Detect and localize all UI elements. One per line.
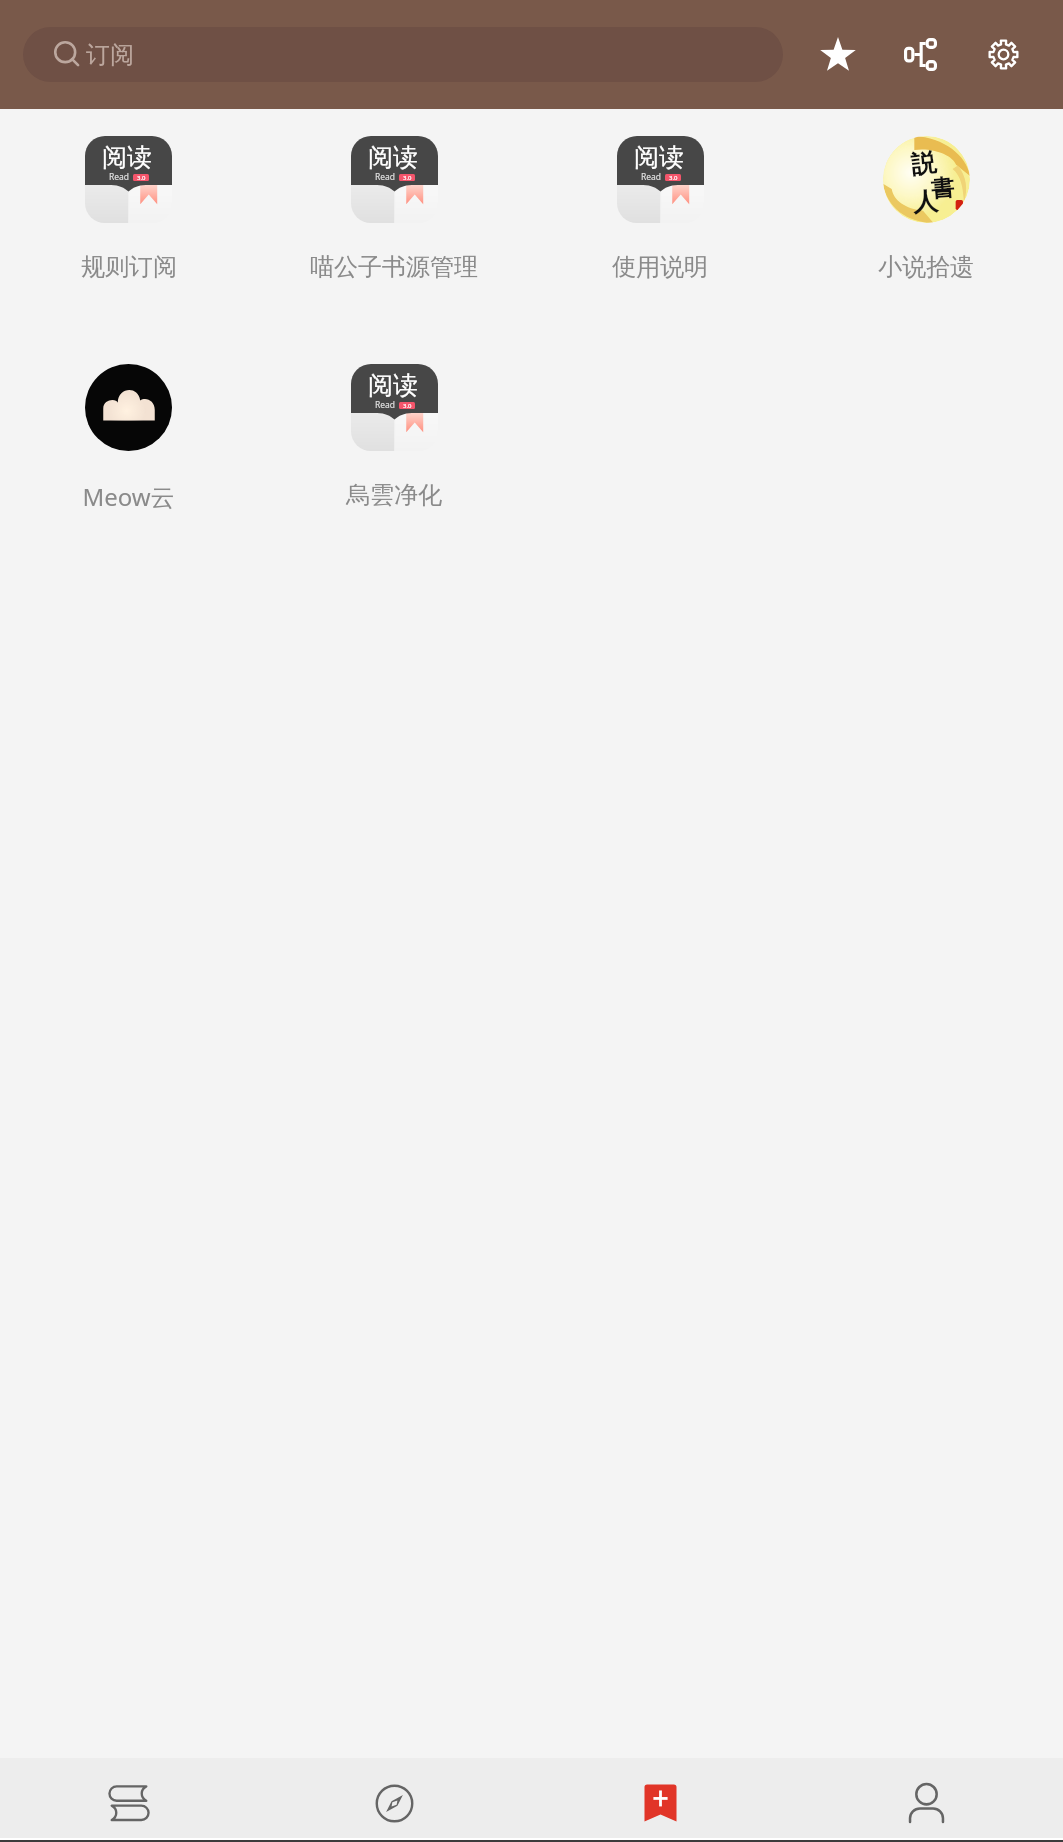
staticText: 書 <box>930 173 955 204</box>
button[interactable]: Subscriptions <box>527 1763 793 1842</box>
button[interactable]: 阅读 <box>261 337 527 565</box>
staticText: 订阅 <box>86 40 134 70</box>
button[interactable]: Explore <box>261 1763 527 1842</box>
button[interactable]: 阅读 <box>527 109 793 337</box>
staticText: 3.0 <box>403 174 412 181</box>
staticText: 3.0 <box>669 174 678 181</box>
button[interactable]: Favorites <box>796 13 879 96</box>
button[interactable]: Bookshelf <box>0 1763 261 1842</box>
staticText: 烏雲净化 <box>346 480 442 510</box>
staticText: 喵公子书源管理 <box>310 252 478 282</box>
button[interactable]: 阅读 <box>0 109 261 337</box>
button[interactable]: 説 <box>793 109 1059 337</box>
staticText: Read <box>375 171 396 183</box>
staticText: Meow云 <box>82 480 175 513</box>
staticText: 阅读 <box>368 370 418 401</box>
button[interactable]: Source groups <box>879 13 962 96</box>
staticText: 规则订阅 <box>81 252 177 282</box>
staticText: 人 <box>912 185 939 218</box>
button[interactable]: 阅读 <box>261 109 527 337</box>
staticText: 阅读 <box>368 142 418 173</box>
staticText: 阅读 <box>102 142 152 173</box>
button[interactable]: 订阅 <box>23 27 783 82</box>
staticText: 3.0 <box>137 174 146 181</box>
staticText: Read <box>109 171 130 183</box>
staticText: Read <box>375 399 396 411</box>
staticText: Read <box>641 171 662 183</box>
staticText: 3.0 <box>403 402 412 409</box>
button[interactable]: Settings <box>962 13 1045 96</box>
staticText: 小说拾遗 <box>878 252 974 282</box>
staticText: 使用说明 <box>612 252 708 282</box>
staticText: 説 <box>909 147 938 180</box>
staticText: 阅读 <box>634 142 684 173</box>
button[interactable]: Meow云 <box>0 337 261 565</box>
button[interactable]: Profile <box>793 1763 1059 1842</box>
